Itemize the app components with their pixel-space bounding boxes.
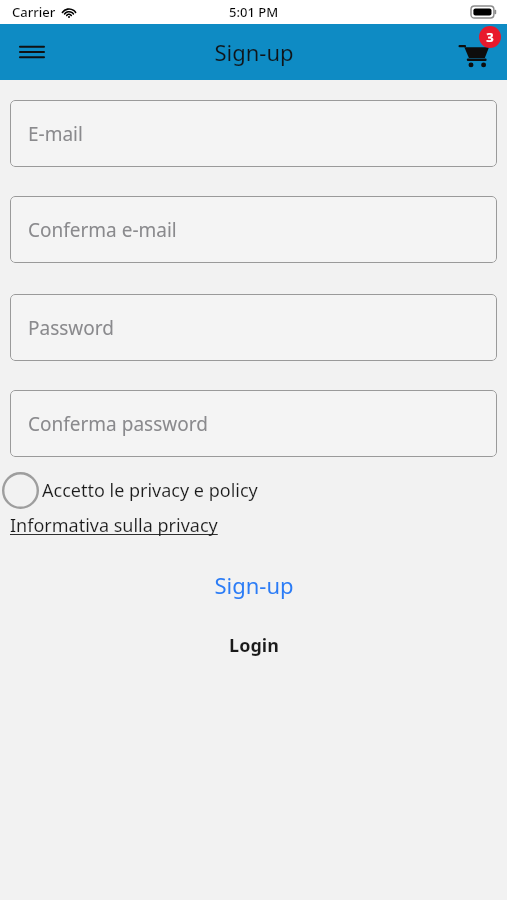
button[interactable]: Password xyxy=(10,294,497,361)
button[interactable]: Conferma password xyxy=(10,390,497,457)
staticText: Login xyxy=(229,633,279,658)
staticText: Conferma e-mail xyxy=(28,217,177,243)
button[interactable]: Accetto le privacy e policy xyxy=(0,470,507,510)
button[interactable]: Menu xyxy=(10,30,54,74)
button[interactable]: Cart, 3 items xyxy=(449,26,501,78)
staticText: E-mail xyxy=(28,121,83,147)
staticText: Carrier xyxy=(12,3,56,21)
staticText: Conferma password xyxy=(28,411,208,437)
button[interactable]: Conferma e-mail xyxy=(10,196,497,263)
staticText: Sign-up xyxy=(214,570,294,600)
staticText: Informativa sulla privacy xyxy=(10,513,218,538)
staticText: 5:01 PM xyxy=(229,3,279,21)
staticText: Sign-up xyxy=(214,37,294,67)
button[interactable]: Informativa sulla privacy xyxy=(10,513,218,538)
button[interactable]: Sign-up xyxy=(0,562,507,608)
staticText: Accetto le privacy e policy xyxy=(42,478,258,503)
button[interactable]: E-mail xyxy=(10,100,497,167)
staticText: Password xyxy=(28,315,114,341)
button[interactable]: Login xyxy=(0,625,507,666)
staticText: 3 xyxy=(486,28,494,46)
